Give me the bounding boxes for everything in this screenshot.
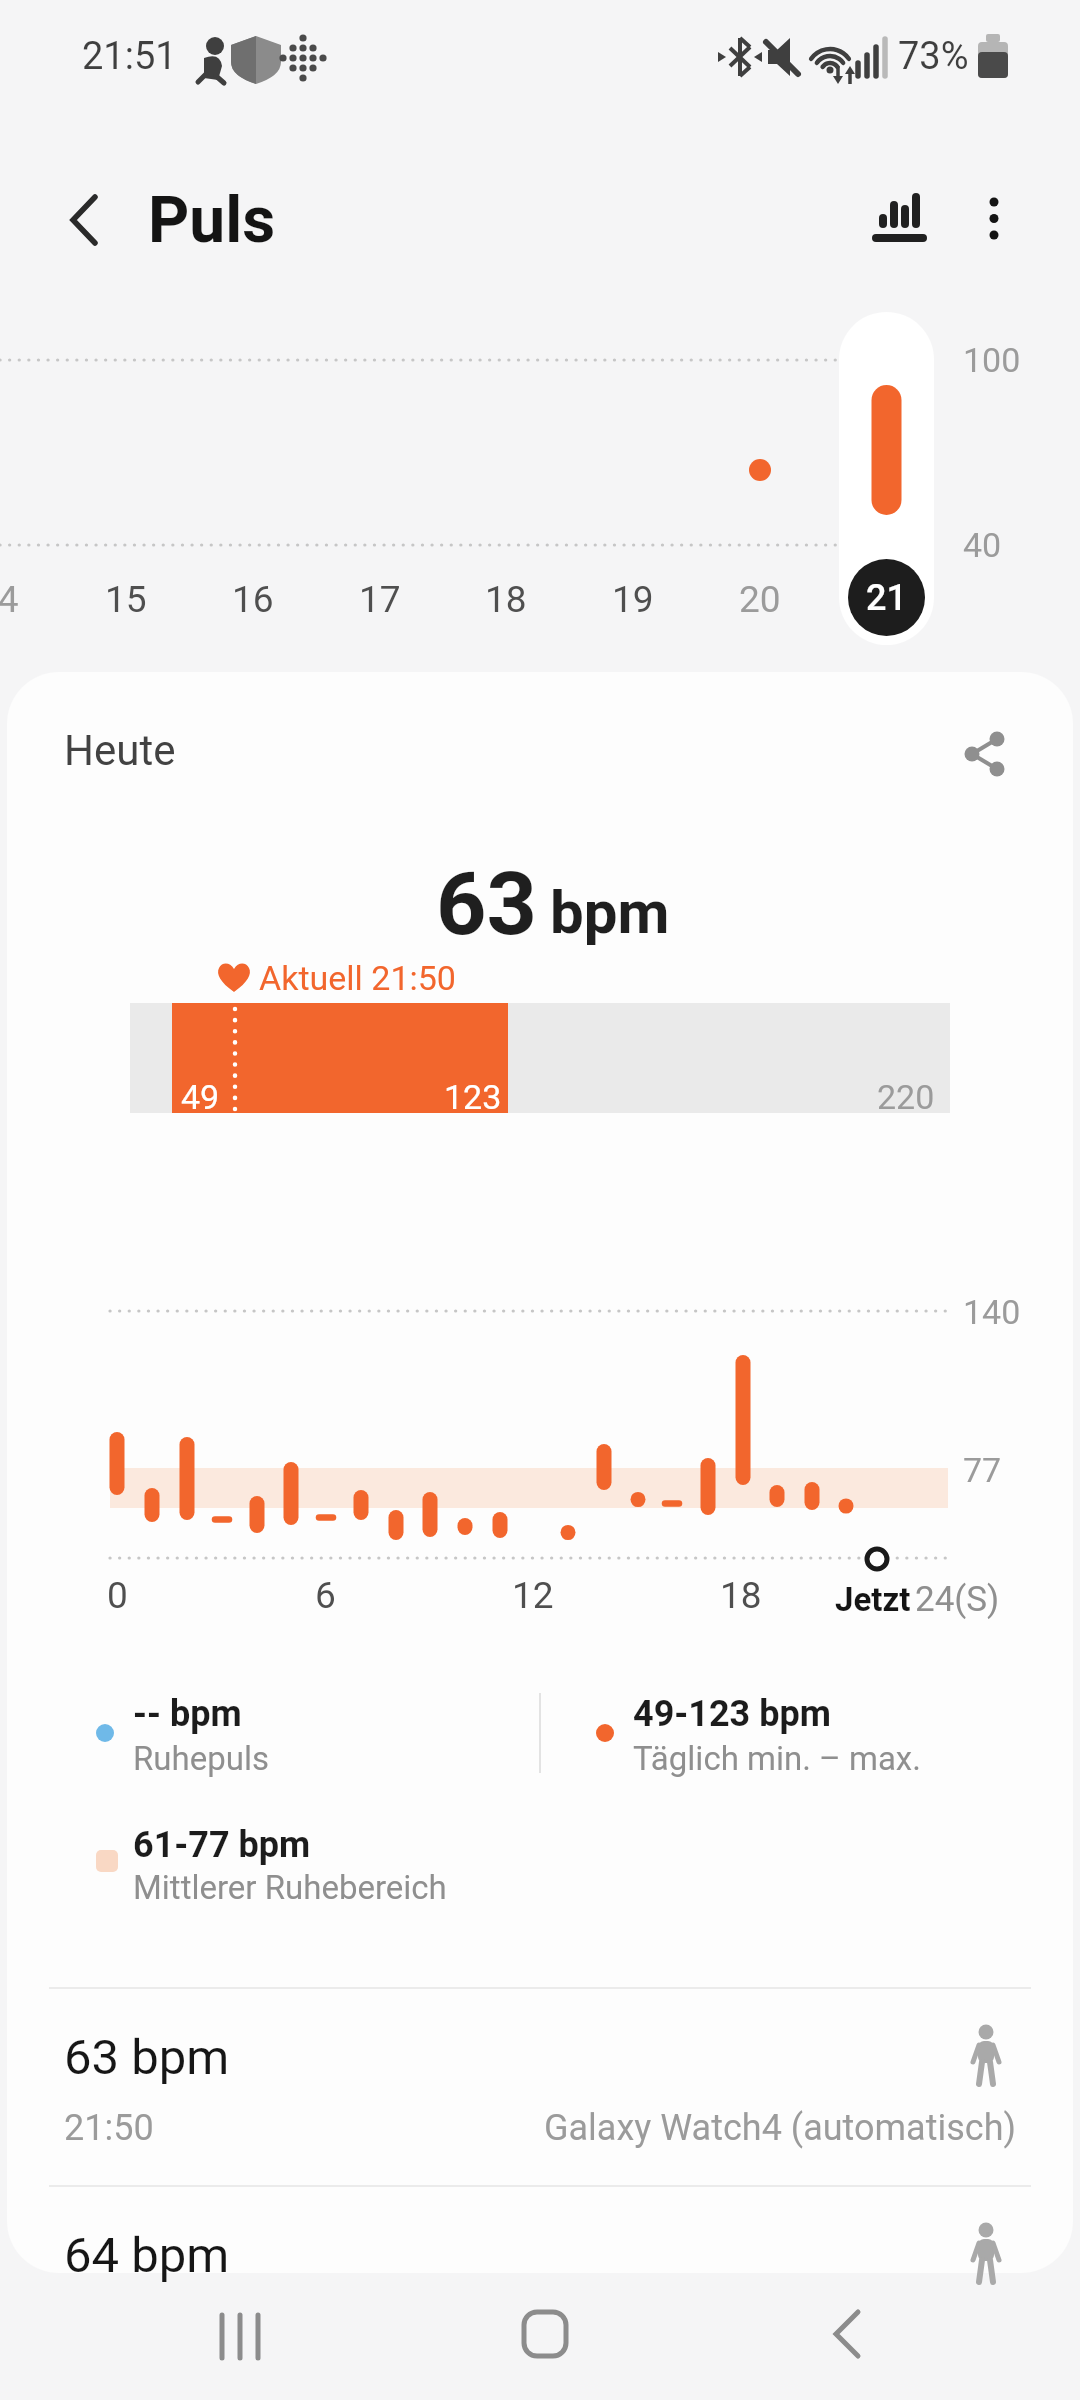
staticText: 40 xyxy=(963,525,1002,565)
button[interactable]: 19 xyxy=(593,575,673,623)
staticText: Galaxy Watch4 (automatisch) xyxy=(544,2107,1016,2149)
staticText: 17 xyxy=(359,578,401,621)
button[interactable] xyxy=(480,2290,600,2390)
button[interactable] xyxy=(945,714,1025,794)
staticText: Aktuell 21:50 xyxy=(259,958,456,998)
button[interactable]: 15 xyxy=(86,575,166,623)
staticText: 21 xyxy=(866,577,907,619)
staticText: 64 bpm xyxy=(64,2227,230,2284)
staticText: 61-77 bpm xyxy=(133,1824,311,1866)
staticText: 15 xyxy=(105,578,147,621)
staticText: 21:50 xyxy=(64,2107,154,2149)
staticText: 220 xyxy=(877,1077,935,1111)
button[interactable]: 20 xyxy=(720,575,800,623)
staticText: 123 xyxy=(444,1077,502,1111)
button[interactable]: 17 xyxy=(340,575,420,623)
staticText: Puls xyxy=(148,183,276,257)
button[interactable]: 16 xyxy=(213,575,293,623)
staticText: Ruhepuls xyxy=(133,1739,269,1778)
staticText: 73% xyxy=(898,34,969,79)
staticText: 14 xyxy=(0,578,19,621)
staticText: -- bpm xyxy=(133,1693,242,1735)
staticText: 63 xyxy=(436,852,537,955)
staticText: 20 xyxy=(739,578,781,621)
button[interactable] xyxy=(958,182,1030,292)
staticText: 63 bpm xyxy=(64,2029,230,2086)
staticText: 100 xyxy=(963,340,1021,380)
staticText: 16 xyxy=(232,578,274,621)
staticText: 18 xyxy=(720,1574,762,1617)
button[interactable]: 18 xyxy=(466,575,546,623)
button[interactable] xyxy=(7,2188,1073,2273)
staticText: 49-123 bpm xyxy=(633,1693,831,1735)
staticText: 24(S) xyxy=(915,1579,1000,1620)
staticText: 49 xyxy=(181,1077,220,1111)
button[interactable] xyxy=(7,1990,1073,2186)
button[interactable] xyxy=(45,185,115,255)
staticText: 140 xyxy=(963,1292,1021,1332)
staticText: bpm xyxy=(550,877,670,947)
staticText: 12 xyxy=(512,1574,554,1617)
staticText: Mittlerer Ruhebereich xyxy=(133,1868,447,1907)
button[interactable] xyxy=(780,2290,920,2390)
staticText: 77 xyxy=(963,1450,1002,1490)
staticText: 21:51 xyxy=(82,34,177,79)
staticText: Jetzt xyxy=(835,1580,911,1619)
staticText: 6 xyxy=(315,1574,336,1617)
staticText: Täglich min. – max. xyxy=(633,1739,921,1778)
button[interactable] xyxy=(150,2290,330,2390)
staticText: Heute xyxy=(64,726,176,775)
button[interactable] xyxy=(862,182,934,254)
staticText: 19 xyxy=(612,578,654,621)
staticText: 0 xyxy=(107,1574,128,1617)
staticText: 18 xyxy=(485,578,527,621)
button[interactable]: 21 xyxy=(839,312,934,645)
